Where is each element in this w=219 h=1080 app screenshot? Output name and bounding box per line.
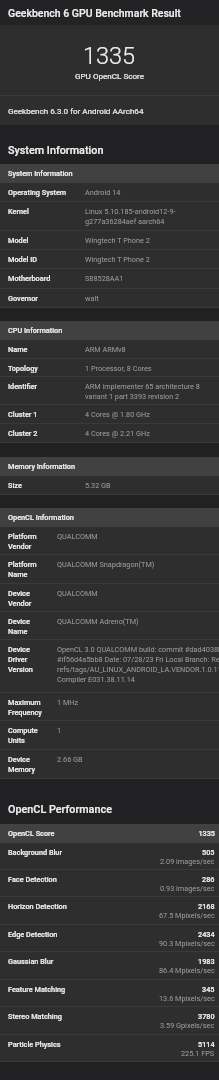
button[interactable]: Stereo Matching	[0, 1007, 219, 1035]
staticText: Gaussian Blur	[8, 957, 108, 966]
button[interactable]: Cluster 2	[0, 424, 219, 443]
staticText: 2.09 images/sec	[160, 857, 215, 866]
staticText: Platform Name	[8, 560, 48, 578]
button[interactable]: Device Vendor	[0, 584, 219, 612]
staticText: Governor	[8, 294, 76, 303]
staticText: 225.1 FPS	[181, 1049, 215, 1058]
staticText: 67.5 Mpixels/sec	[159, 911, 215, 920]
staticText: 1 Processor, 8 Cores	[85, 364, 152, 373]
staticText: Model	[8, 236, 76, 245]
staticText: Feature Matching	[8, 985, 108, 994]
button[interactable]: Model	[0, 231, 219, 250]
button[interactable]: Edge Detection	[0, 925, 219, 952]
staticText: Edge Detection	[8, 930, 108, 939]
staticText: Operating System	[8, 188, 76, 197]
button[interactable]: Horizon Detection	[0, 897, 219, 925]
staticText: OpenCL Performance	[8, 803, 112, 816]
staticText: QUALCOMM	[57, 532, 98, 541]
staticText: 2.66 GB	[57, 755, 83, 764]
button[interactable]: Face Detection	[0, 870, 219, 897]
button[interactable]: Geekbench 6 GPU Benchmark Result	[0, 0, 219, 25]
staticText: Geekbench 6.3.0 for Android AArch64	[8, 106, 144, 115]
button[interactable]: Compute Units	[0, 721, 219, 750]
staticText: OpenCL Information	[8, 513, 74, 522]
staticText: Topology	[8, 364, 76, 373]
staticText: Wingtech T Phone 2	[85, 236, 150, 245]
staticText: 4 Cores @ 2.21 GHz	[85, 429, 150, 438]
staticText: 345	[202, 985, 215, 994]
staticText: 2168	[198, 902, 215, 911]
staticText: 1335	[8, 829, 215, 838]
staticText: Maximum Frequency	[8, 698, 48, 716]
staticText: Horizon Detection	[8, 902, 108, 911]
staticText: 1335	[83, 42, 136, 70]
staticText: Stereo Matching	[8, 1012, 108, 1021]
staticText: 0.93 images/sec	[160, 884, 215, 893]
button[interactable]: Platform Vendor	[0, 527, 219, 555]
button[interactable]: Device Name	[0, 612, 219, 640]
button[interactable]: Maximum Frequency	[0, 693, 219, 721]
staticText: System Information	[8, 144, 104, 157]
button[interactable]: Device Driver Version	[0, 640, 219, 693]
staticText: ARM ARMv8	[85, 345, 126, 354]
button[interactable]: Operating System	[0, 183, 219, 202]
button[interactable]: Background Blur	[0, 843, 219, 870]
staticText: 1983	[198, 957, 215, 966]
staticText: S88528AA1	[85, 274, 124, 283]
staticText: Device Memory	[8, 755, 48, 773]
staticText: 1	[57, 726, 62, 735]
staticText: 286	[202, 875, 215, 884]
staticText: Size	[8, 481, 76, 490]
button[interactable]: Name	[0, 340, 219, 359]
staticText: Motherboard	[8, 274, 76, 283]
staticText: Cluster 1	[8, 410, 76, 419]
button[interactable]: Identifier	[0, 377, 219, 405]
staticText: Kernel	[8, 207, 76, 216]
staticText: QUALCOMM	[57, 589, 98, 598]
staticText: 4 Cores @ 1.80 GHz	[85, 410, 150, 419]
button[interactable]: Particle Physics	[0, 1035, 219, 1062]
button[interactable]: Feature Matching	[0, 980, 219, 1007]
staticText: 86.4 Mpixels/sec	[159, 966, 215, 975]
staticText: Memory Information	[8, 462, 76, 471]
button[interactable]: Model ID	[0, 250, 219, 269]
staticText: walt	[85, 294, 99, 303]
staticText: QUALCOMM Adreno(TM)	[57, 617, 139, 626]
staticText: QUALCOMM Snapdragon(TM)	[57, 560, 155, 569]
staticText: GPU OpenCL Score	[75, 71, 145, 80]
button[interactable]: Motherboard	[0, 269, 219, 289]
button[interactable]: Cluster 1	[0, 405, 219, 424]
staticText: 5.32 GB	[85, 481, 111, 490]
staticText: Model ID	[8, 255, 76, 264]
staticText: Particle Physics	[8, 1040, 108, 1049]
staticText: Background Blur	[8, 848, 108, 857]
staticText: Device Name	[8, 617, 48, 635]
staticText: Geekbench 6 GPU Benchmark Result	[8, 7, 181, 19]
staticText: Cluster 2	[8, 429, 76, 438]
staticText: Device Driver Version	[8, 645, 48, 673]
staticText: Face Detection	[8, 875, 108, 884]
staticText: System Information	[8, 169, 73, 178]
button[interactable]: Kernel	[0, 202, 219, 231]
button[interactable]: Size	[0, 476, 219, 495]
staticText: 505	[202, 848, 215, 857]
button[interactable]: Governor	[0, 289, 219, 308]
staticText: 2434	[198, 930, 215, 939]
staticText: Device Vendor	[8, 589, 48, 607]
staticText: Identifier	[8, 382, 76, 391]
button[interactable]: Topology	[0, 359, 219, 377]
button[interactable]: Device Memory	[0, 750, 219, 779]
staticText: Platform Vendor	[8, 532, 48, 550]
staticText: Wingtech T Phone 2	[85, 255, 150, 264]
staticText: Compute Units	[8, 726, 48, 744]
button[interactable]: Platform Name	[0, 555, 219, 584]
staticText: 3.59 Gpixels/sec	[160, 1021, 215, 1030]
staticText: 5114	[198, 1040, 215, 1049]
staticText: OpenCL 3.0 QUALCOMM build: commit #dad40…	[57, 645, 219, 683]
staticText: Linux 5.10.185-android12-9-g277a36284aef…	[85, 207, 215, 225]
button[interactable]: Gaussian Blur	[0, 952, 219, 980]
staticText: Name	[8, 345, 76, 354]
staticText: CPU Information	[8, 326, 63, 335]
staticText: 1 MHz	[57, 698, 79, 707]
staticText: ARM implementer 65 architecture 8 varian…	[85, 382, 215, 400]
